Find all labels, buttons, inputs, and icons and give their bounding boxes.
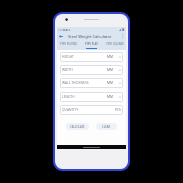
staticText: PCS	[115, 108, 121, 112]
button[interactable]: CALCULATE	[66, 123, 89, 130]
staticText: PIPE SQUARE	[106, 42, 124, 46]
button[interactable]: QUANTITY	[60, 105, 123, 115]
button[interactable]: PIPE ROUND	[57, 40, 80, 50]
button[interactable]: PIPE SQUARE	[103, 40, 126, 50]
staticText: CLEAR	[102, 125, 111, 129]
button[interactable]: HEIGHT	[60, 52, 123, 62]
staticText: Steel Weight Calculator	[68, 34, 112, 39]
button[interactable]: Back	[57, 32, 64, 40]
staticText: WIDTH	[62, 68, 73, 72]
staticText: QUANTITY	[62, 108, 78, 112]
staticText: WALL THICKNESS	[62, 81, 89, 85]
staticText: HEIGHT	[62, 55, 74, 59]
button[interactable]: WIDTH	[60, 65, 123, 75]
button[interactable]: CLEAR	[96, 123, 117, 130]
button[interactable]: PIPE FLAT	[80, 40, 103, 50]
staticText: PIPE FLAT	[85, 42, 98, 46]
staticText: MM	[107, 95, 113, 99]
button[interactable]: More options	[118, 32, 126, 40]
staticText: MM	[107, 68, 113, 72]
staticText: LENGTH	[62, 95, 75, 99]
staticText: PIPE ROUND	[60, 42, 77, 46]
staticText: MM	[107, 81, 113, 85]
button[interactable]: LENGTH	[60, 92, 123, 102]
staticText: CALCULATE	[70, 125, 85, 129]
staticText: MM	[107, 55, 113, 59]
button[interactable]: WALL THICKNESS	[60, 78, 123, 88]
